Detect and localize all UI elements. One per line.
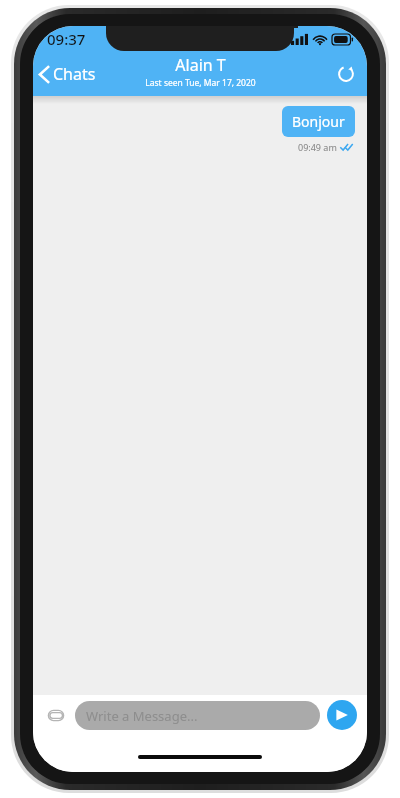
button[interactable]: Send [327,700,357,730]
staticText: 09:37 [47,29,86,49]
staticText: Chats [53,63,96,85]
staticText: Alain T [175,54,226,76]
staticText: Last seen Tue, Mar 17, 2020 [145,77,256,89]
button[interactable]: Write a Message... [75,701,320,730]
button[interactable]: Chats [33,59,104,89]
button[interactable]: Bonjour [282,106,355,137]
button[interactable]: Attach file [43,702,69,728]
staticText: Write a Message... [86,707,198,725]
staticText: Bonjour [292,112,345,131]
button[interactable]: Refresh [325,59,367,89]
staticText: 09:49 am [298,141,337,153]
